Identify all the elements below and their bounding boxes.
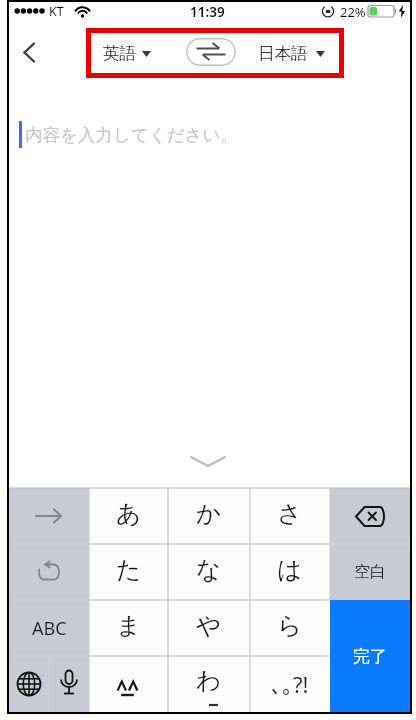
button[interactable]: は bbox=[250, 544, 330, 600]
staticText: は bbox=[277, 554, 303, 585]
staticText: 22% bbox=[340, 3, 366, 19]
button[interactable]: ら bbox=[250, 600, 330, 656]
button[interactable] bbox=[49, 656, 89, 712]
staticText: た bbox=[116, 554, 142, 585]
staticText: さ bbox=[277, 498, 303, 529]
staticText: や bbox=[196, 610, 222, 641]
staticText: ま bbox=[116, 610, 142, 641]
button[interactable]: あ bbox=[89, 488, 168, 544]
staticText: わ bbox=[196, 665, 222, 696]
button[interactable]: ABC bbox=[9, 600, 89, 656]
button[interactable] bbox=[186, 38, 236, 66]
staticText: ､｡?! bbox=[271, 669, 309, 699]
staticText: か bbox=[196, 498, 222, 529]
staticText: あ bbox=[116, 498, 142, 529]
staticText: 日本語 bbox=[258, 43, 308, 64]
button[interactable] bbox=[9, 544, 89, 600]
staticText: 空白 bbox=[354, 562, 386, 582]
staticText: 11:39 bbox=[190, 3, 225, 19]
button[interactable] bbox=[9, 488, 89, 544]
staticText: ら bbox=[277, 610, 303, 641]
button[interactable]: た bbox=[89, 544, 168, 600]
button[interactable]: ､｡?! bbox=[250, 656, 330, 712]
button[interactable] bbox=[9, 656, 49, 712]
staticText: な bbox=[196, 554, 222, 585]
staticText: KT bbox=[49, 3, 64, 19]
button[interactable]: や bbox=[168, 600, 250, 656]
staticText: 完了 bbox=[353, 646, 387, 667]
button[interactable]: さ bbox=[250, 488, 330, 544]
button[interactable]: 日本語 bbox=[252, 36, 314, 70]
button[interactable]: 完了 bbox=[330, 600, 410, 712]
button[interactable]: 英語 bbox=[103, 36, 159, 70]
staticText: 内容を入力してください。 bbox=[25, 124, 238, 146]
button[interactable] bbox=[12, 36, 44, 68]
button[interactable] bbox=[89, 656, 168, 712]
button[interactable]: か bbox=[168, 488, 250, 544]
staticText: ABC bbox=[32, 616, 67, 641]
button[interactable]: わ bbox=[168, 656, 250, 712]
button[interactable] bbox=[330, 488, 410, 544]
button[interactable]: な bbox=[168, 544, 250, 600]
staticText: 英語 bbox=[103, 43, 136, 64]
button[interactable]: ま bbox=[89, 600, 168, 656]
button[interactable]: 空白 bbox=[330, 544, 410, 600]
